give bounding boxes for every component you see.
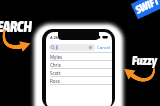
button[interactable]: Swift tag [133, 0, 160, 17]
staticText: Cancel [97, 44, 110, 50]
button[interactable]: Chris [46, 61, 112, 69]
staticText: Fuzzy [132, 52, 158, 68]
button[interactable]: Scott [46, 69, 112, 77]
button[interactable]: Myles [46, 53, 112, 61]
staticText: 4:26 [50, 35, 58, 40]
staticText: SWIFT [133, 0, 160, 17]
staticText: Chris [50, 62, 61, 68]
staticText: Myles [50, 54, 63, 60]
button[interactable]: Cancel [97, 44, 110, 50]
staticText: SEARCH [0, 17, 32, 35]
staticText: Ross [50, 78, 60, 84]
button[interactable]: Search field [49, 44, 95, 51]
button[interactable]: Ross [46, 77, 112, 85]
staticText: Scott [50, 70, 61, 76]
